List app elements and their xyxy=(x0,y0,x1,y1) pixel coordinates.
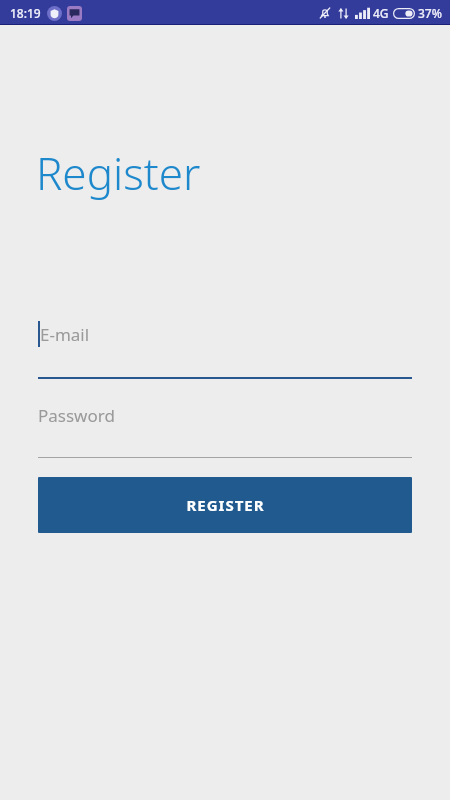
button[interactable]: Password xyxy=(38,394,412,458)
staticText: Register xyxy=(36,143,201,203)
staticText: E-mail xyxy=(40,323,90,346)
button[interactable]: REGISTER xyxy=(38,477,412,533)
staticText: 18:19 xyxy=(10,5,41,21)
button[interactable]: E-mail xyxy=(38,313,412,379)
staticText: 4G xyxy=(373,5,389,21)
staticText: Password xyxy=(38,404,115,427)
staticText: REGISTER xyxy=(186,495,265,515)
staticText: 37% xyxy=(418,5,442,21)
